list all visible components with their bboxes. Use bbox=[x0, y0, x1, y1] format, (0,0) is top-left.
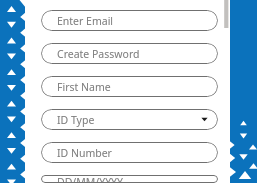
button[interactable]: Enter Email bbox=[41, 10, 218, 31]
button[interactable]: First Name bbox=[41, 76, 218, 97]
staticText: ID Number bbox=[57, 146, 112, 160]
staticText: DD/MM/YYYY bbox=[57, 175, 123, 183]
staticText: First Name bbox=[57, 80, 111, 94]
staticText: ID Type bbox=[57, 113, 95, 127]
button[interactable]: ID Number bbox=[41, 142, 218, 163]
staticText: Enter Email bbox=[57, 14, 114, 28]
button[interactable]: DD/MM/YYYY bbox=[41, 175, 218, 183]
button[interactable]: Create Password bbox=[41, 43, 218, 64]
staticText: Create Password bbox=[57, 47, 140, 61]
button[interactable]: ID Type bbox=[41, 109, 218, 130]
